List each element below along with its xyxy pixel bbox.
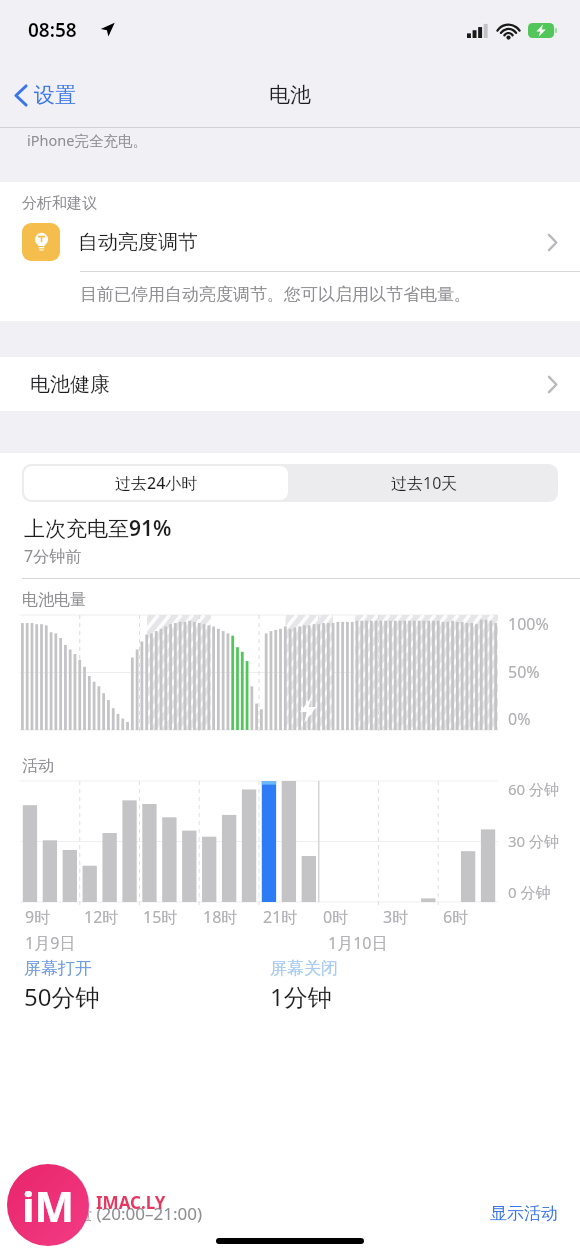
staticText: 自动亮度调节 bbox=[78, 230, 547, 255]
staticText: 7分钟前 bbox=[24, 545, 82, 567]
staticText: 1月10日 bbox=[328, 932, 388, 952]
staticText: 6时 bbox=[443, 906, 469, 928]
staticText: 活动 bbox=[22, 756, 54, 776]
staticText: 0% bbox=[508, 708, 531, 730]
staticText: 上次充电至91% bbox=[24, 514, 172, 543]
staticText: 过去24小时 bbox=[115, 472, 198, 494]
button[interactable]: 过去24小时 bbox=[24, 466, 288, 500]
staticText: 显示活动 bbox=[490, 1203, 558, 1224]
staticText: 0 分钟 bbox=[508, 882, 551, 902]
staticText: 1分钟 bbox=[270, 980, 332, 1013]
staticText: 设置 bbox=[34, 82, 76, 108]
staticText: 电池 bbox=[269, 82, 311, 108]
staticText: 屏幕关闭 bbox=[270, 958, 338, 979]
staticText: 30 分钟 bbox=[508, 831, 560, 851]
staticText: 电池电量 bbox=[22, 590, 86, 610]
button[interactable]: 设置 bbox=[0, 74, 90, 116]
button[interactable]: 显示活动 bbox=[490, 1203, 558, 1224]
staticText: 9时 bbox=[25, 906, 51, 928]
staticText: 电池用量 (20:00–21:00) bbox=[24, 1202, 490, 1225]
staticText: 18时 bbox=[203, 906, 238, 928]
staticText: 60 分钟 bbox=[508, 779, 560, 799]
staticText: iM bbox=[22, 1177, 75, 1234]
staticText: 屏幕打开 bbox=[24, 958, 92, 979]
staticText: iPhone完全充电。 bbox=[27, 130, 147, 150]
staticText: 0时 bbox=[323, 906, 349, 928]
button[interactable]: 电池健康 bbox=[0, 357, 580, 411]
staticText: 100% bbox=[508, 613, 549, 635]
staticText: 过去10天 bbox=[391, 472, 458, 494]
button[interactable]: 过去10天 bbox=[290, 464, 558, 502]
staticText: 50分钟 bbox=[24, 980, 100, 1013]
button[interactable]: 自动亮度调节 bbox=[0, 213, 580, 271]
staticText: 1月9日 bbox=[25, 932, 76, 952]
staticText: 电池健康 bbox=[30, 372, 547, 397]
staticText: 3时 bbox=[383, 906, 409, 928]
staticText: 21时 bbox=[263, 906, 298, 928]
staticText: 50% bbox=[508, 661, 540, 683]
staticText: 15时 bbox=[143, 906, 178, 928]
staticText: 目前已停用自动亮度调节。您可以启用以节省电量。 bbox=[80, 284, 471, 305]
staticText: 08:58 bbox=[28, 17, 77, 43]
staticText: 分析和建议 bbox=[22, 194, 97, 213]
staticText: IMAC.LY bbox=[96, 1191, 166, 1214]
staticText: 12时 bbox=[84, 906, 119, 928]
